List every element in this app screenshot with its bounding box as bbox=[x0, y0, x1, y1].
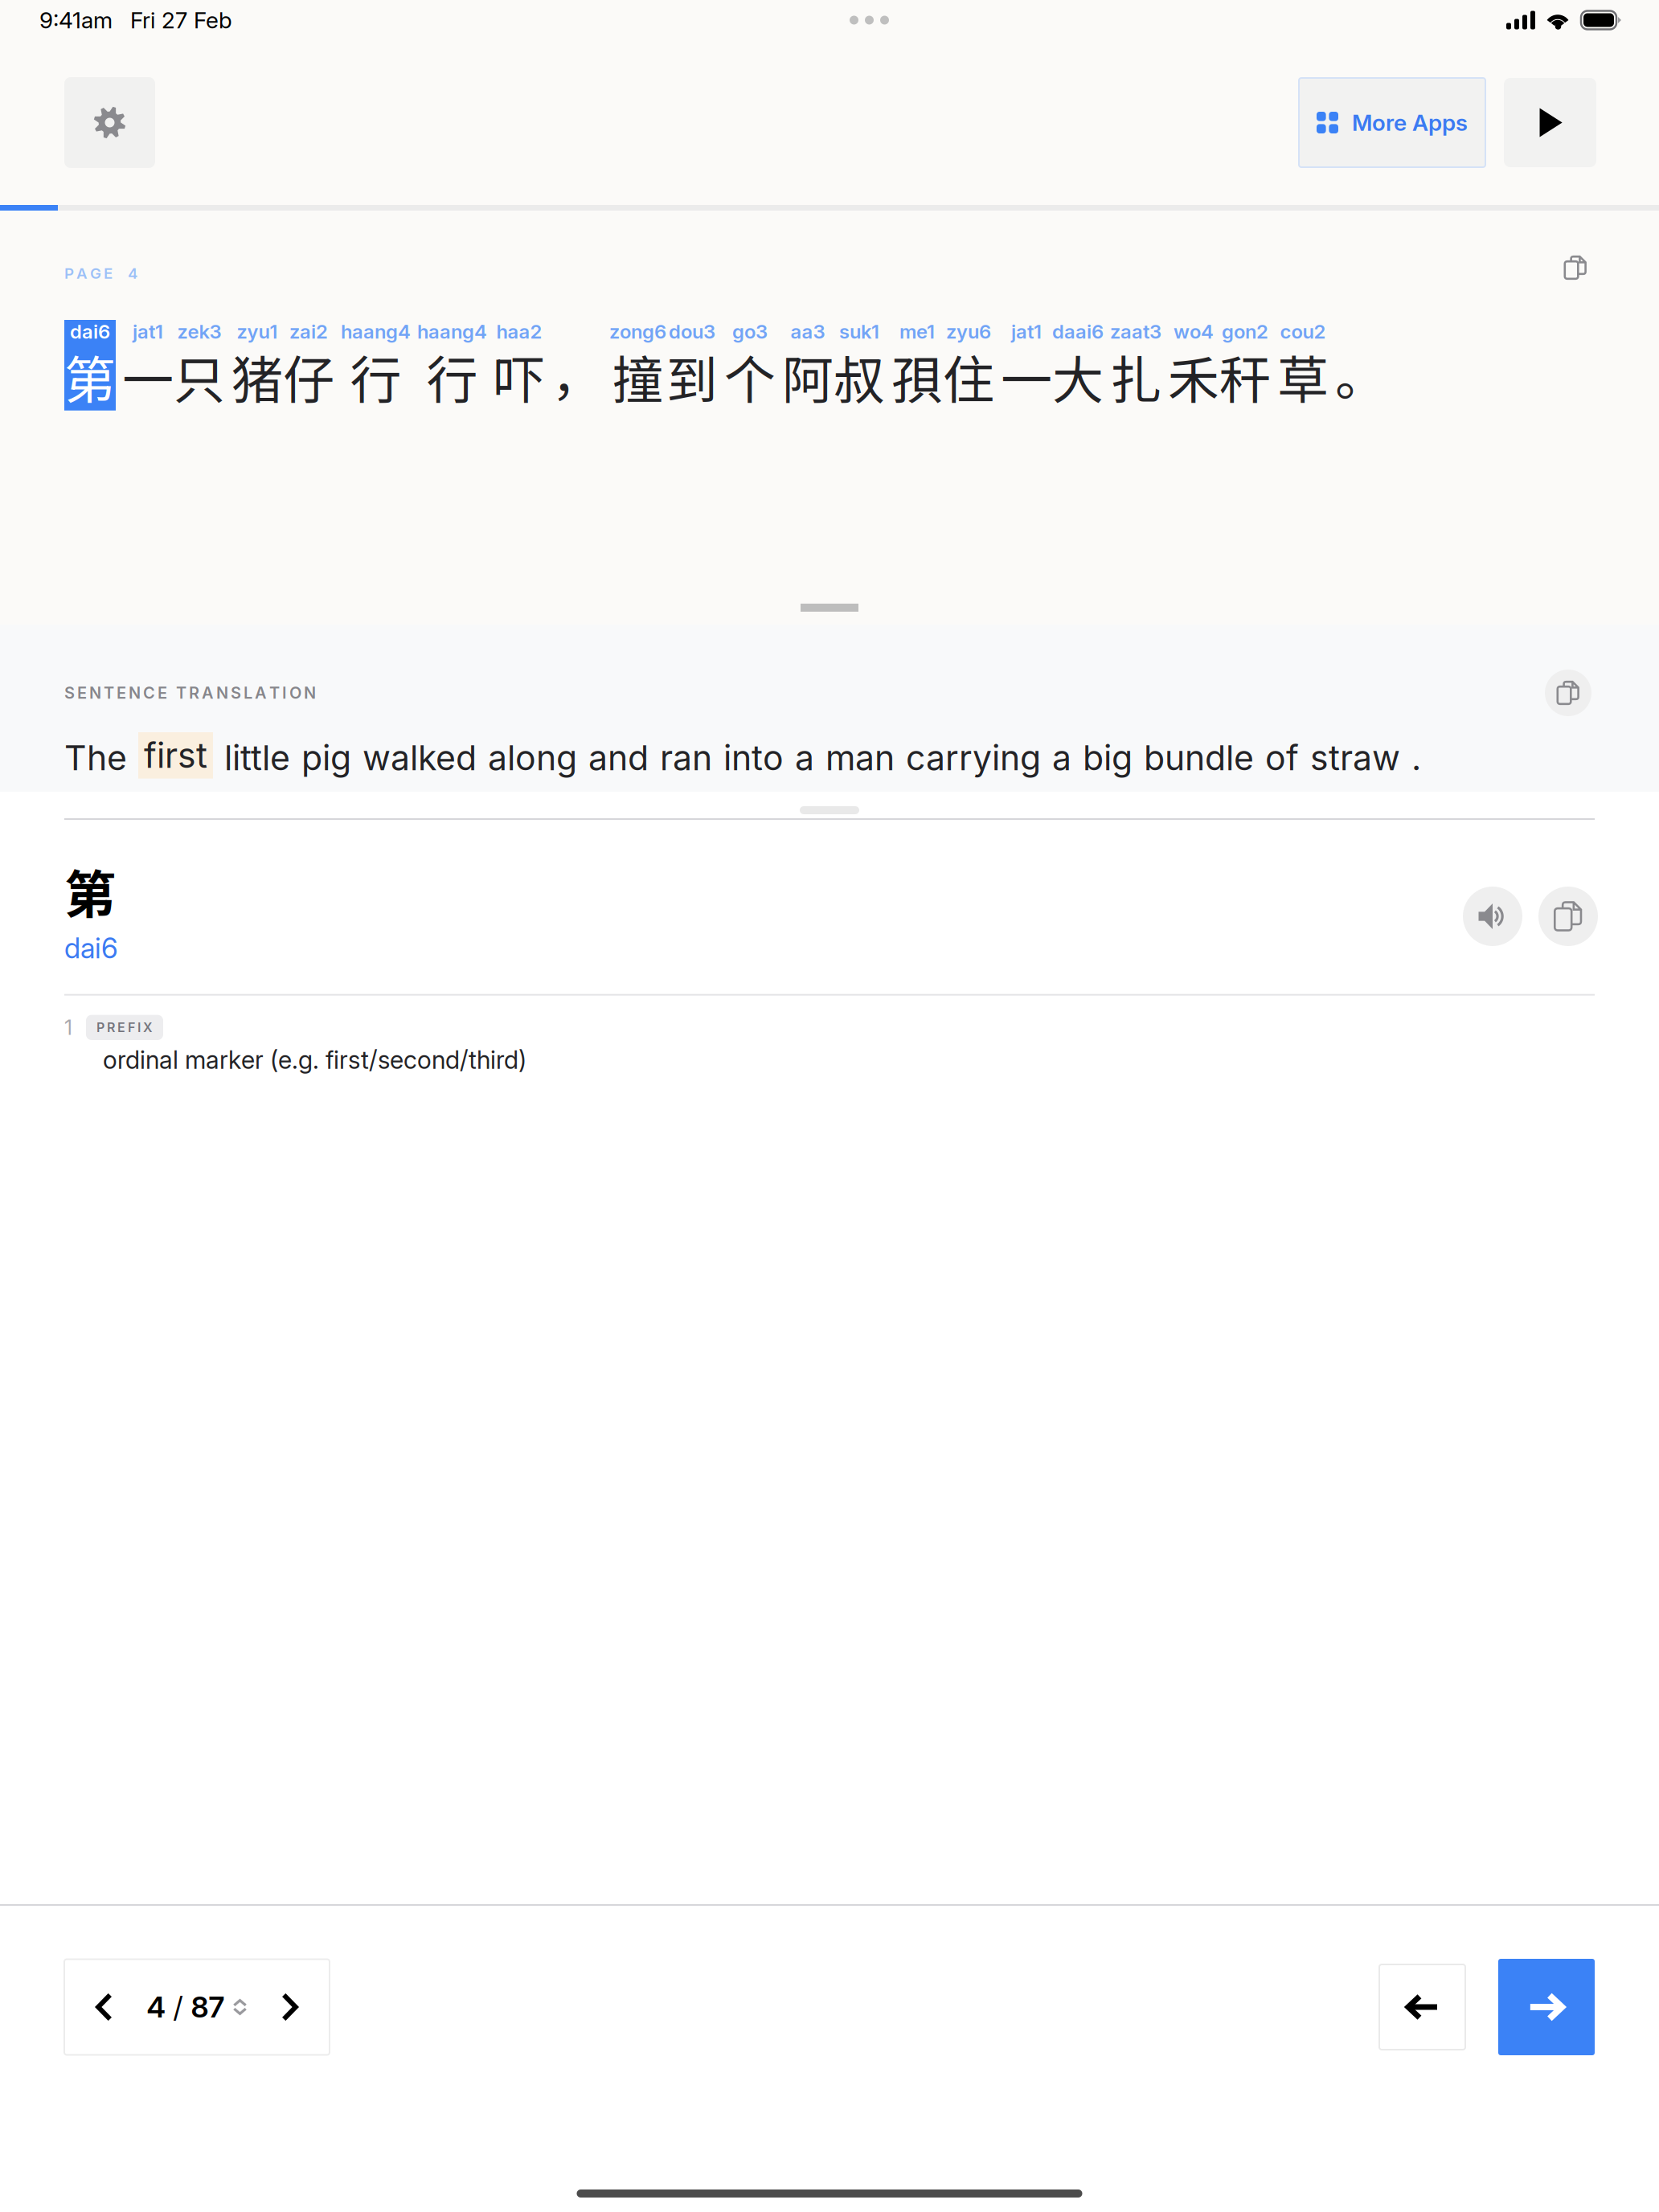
button[interactable]: Continue bbox=[1498, 1959, 1595, 2055]
staticText: ， bbox=[551, 336, 603, 410]
staticText: a bbox=[795, 737, 814, 779]
staticText: 第 bbox=[64, 854, 116, 928]
staticText: cou2 bbox=[1280, 320, 1326, 343]
staticText: 行 bbox=[350, 339, 401, 414]
staticText: jat1 bbox=[133, 320, 163, 343]
staticText: 只 bbox=[174, 339, 225, 414]
staticText: zai2 bbox=[289, 320, 328, 343]
staticText: 到 bbox=[666, 339, 718, 414]
button[interactable]: Copy word bbox=[1538, 887, 1598, 946]
staticText: P A G E 4 bbox=[64, 264, 137, 282]
button[interactable]: Copy translation bbox=[1545, 670, 1591, 716]
staticText: bundle bbox=[1144, 737, 1254, 779]
staticText: 4 bbox=[147, 1990, 165, 2025]
staticText: 一 bbox=[122, 339, 174, 414]
staticText: 行 bbox=[426, 339, 478, 414]
staticText: . bbox=[1411, 737, 1421, 779]
staticText: 大 bbox=[1052, 339, 1104, 414]
staticText: 住 bbox=[943, 339, 994, 414]
staticText: ran bbox=[660, 737, 712, 779]
button[interactable]: Back bbox=[1379, 1964, 1465, 2050]
staticText: haa2 bbox=[496, 320, 542, 343]
staticText: dai6 bbox=[64, 931, 118, 965]
staticText: 仔 bbox=[283, 339, 334, 414]
button[interactable]: Copy sentence bbox=[1552, 244, 1599, 291]
staticText: a bbox=[1052, 737, 1071, 779]
staticText: 9:41am bbox=[39, 7, 113, 34]
staticText: haang4 bbox=[341, 320, 411, 343]
staticText: 个 bbox=[724, 339, 776, 414]
staticText: jat1 bbox=[1011, 320, 1042, 343]
staticText: zyu1 bbox=[237, 320, 278, 343]
staticText: 阿 bbox=[782, 339, 834, 414]
staticText: 吓 bbox=[494, 339, 545, 414]
staticText: 87 bbox=[191, 1990, 225, 2025]
staticText: suk1 bbox=[839, 320, 879, 343]
staticText: aa3 bbox=[791, 320, 825, 343]
staticText: and bbox=[588, 737, 649, 779]
staticText: More Apps bbox=[1352, 109, 1468, 136]
button[interactable]: Next page bbox=[260, 1959, 318, 2055]
staticText: 第 bbox=[64, 339, 116, 414]
staticText: dou3 bbox=[669, 320, 715, 343]
staticText: walked bbox=[363, 737, 477, 779]
button[interactable]: Pronounce word bbox=[1463, 887, 1522, 946]
staticText: wo4 bbox=[1174, 320, 1214, 343]
staticText: 孭 bbox=[891, 339, 943, 414]
staticText: S E N T E N C E T R A N S L A T I O N bbox=[64, 683, 316, 703]
staticText: into bbox=[723, 737, 784, 779]
button[interactable]: Previous page bbox=[76, 1959, 133, 2055]
staticText: carrying bbox=[906, 737, 1041, 779]
staticText: first bbox=[144, 735, 207, 776]
staticText: along bbox=[488, 737, 577, 779]
staticText: zyu6 bbox=[946, 320, 991, 343]
staticText: 草 bbox=[1277, 339, 1329, 414]
staticText: dai6 bbox=[70, 320, 110, 343]
staticText: 猪 bbox=[231, 339, 283, 414]
staticText: pig bbox=[301, 737, 351, 779]
staticText: / bbox=[173, 1990, 183, 2025]
staticText: zong6 bbox=[609, 320, 666, 343]
staticText: 。 bbox=[1335, 336, 1387, 410]
button[interactable]: Settings bbox=[64, 77, 155, 168]
button[interactable]: Play audio bbox=[1504, 78, 1596, 167]
staticText: little bbox=[224, 737, 290, 779]
staticText: 撞 bbox=[612, 339, 664, 414]
staticText: man bbox=[825, 737, 895, 779]
staticText: haang4 bbox=[417, 320, 487, 343]
staticText: 禾 bbox=[1168, 339, 1219, 414]
staticText: of bbox=[1265, 737, 1299, 779]
staticText: zek3 bbox=[177, 320, 221, 343]
staticText: ordinal marker (e.g. first/second/third) bbox=[103, 1045, 526, 1075]
staticText: Fri 27 Feb bbox=[130, 7, 232, 34]
button[interactable]: More Apps bbox=[1299, 78, 1485, 167]
staticText: 一 bbox=[1001, 339, 1052, 414]
staticText: big bbox=[1083, 737, 1133, 779]
staticText: P R E F I X bbox=[96, 1020, 153, 1035]
staticText: 1 bbox=[64, 1015, 72, 1040]
staticText: straw bbox=[1310, 737, 1400, 779]
staticText: gon2 bbox=[1222, 320, 1268, 343]
staticText: zaat3 bbox=[1110, 320, 1161, 343]
staticText: me1 bbox=[899, 320, 935, 343]
staticText: 扎 bbox=[1110, 339, 1161, 414]
staticText: daai6 bbox=[1052, 320, 1104, 343]
staticText: The bbox=[64, 737, 127, 779]
staticText: 叔 bbox=[834, 339, 885, 414]
staticText: 秆 bbox=[1219, 339, 1271, 414]
staticText: go3 bbox=[732, 320, 768, 343]
